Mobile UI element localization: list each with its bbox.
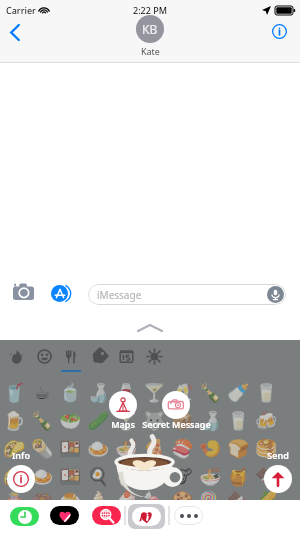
button[interactable]: 🍫 — [252, 462, 280, 490]
button[interactable]: More — [174, 506, 203, 525]
button[interactable]: 🍭 — [196, 490, 224, 504]
button[interactable]: 🍬 — [140, 490, 168, 504]
staticText: 🍛 — [87, 438, 110, 459]
button[interactable]: ☕ — [28, 378, 56, 406]
button[interactable]: App Store — [51, 285, 68, 302]
staticText: 🍻 — [255, 410, 278, 431]
button[interactable] — [7, 465, 35, 493]
staticText: 🍪 — [171, 490, 194, 504]
button[interactable]: 🍯 — [224, 462, 252, 490]
button[interactable]: 🌮 — [0, 462, 28, 490]
button[interactable]: Objects — [85, 340, 113, 374]
button[interactable]: 🍾 — [28, 406, 56, 434]
button[interactable]: 🍛 — [28, 462, 56, 490]
staticText: 🍱 — [59, 438, 82, 459]
button[interactable]: 🥤 — [0, 378, 28, 406]
staticText: Kate — [141, 45, 160, 57]
button[interactable]: 🍰 — [112, 490, 140, 504]
button[interactable]: 🍻 — [252, 406, 280, 434]
staticText: 🍭 — [199, 490, 222, 504]
staticText: 🍫 — [255, 466, 278, 487]
staticText: 🍯 — [227, 466, 250, 487]
staticText: 🍺 — [3, 410, 26, 431]
staticText: 🍶 — [87, 382, 110, 403]
button[interactable]: 🍼 — [224, 378, 252, 406]
button[interactable]: Recents — [10, 507, 39, 526]
button[interactable]: 🍷 — [112, 378, 140, 406]
staticText: 🌽 — [255, 490, 278, 504]
staticText: 🌮 — [3, 466, 26, 487]
button[interactable]: 🌯 — [28, 434, 56, 462]
button[interactable]: 🍣 — [168, 434, 196, 462]
staticText: 🍬 — [143, 490, 166, 504]
button[interactable]: 🥂 — [168, 378, 196, 406]
button[interactable]: 🧁 — [140, 462, 168, 490]
button[interactable]: 🍸 — [112, 406, 140, 434]
button[interactable]: 🍸 — [140, 378, 168, 406]
button[interactable]: 🍺 — [0, 406, 28, 434]
button[interactable]: 🍞 — [224, 434, 252, 462]
button[interactable] — [162, 391, 190, 419]
button[interactable]: 🍮 — [56, 490, 84, 504]
button[interactable]: Favorites — [50, 506, 79, 525]
button[interactable]: 🥞 — [252, 434, 280, 462]
button[interactable]: 🍶 — [84, 378, 112, 406]
button[interactable]: Smileys — [30, 340, 58, 374]
staticText: 🧁 — [143, 466, 166, 487]
staticText: Send — [267, 449, 289, 461]
button[interactable]: 🍤 — [196, 434, 224, 462]
button[interactable]: Details — [268, 20, 291, 43]
staticText: ☕ — [34, 382, 51, 403]
button[interactable]: 🍶 — [196, 406, 224, 434]
staticText: 🍷 — [115, 382, 138, 403]
button[interactable]: Back — [2, 20, 28, 46]
button[interactable]: 🥒 — [84, 406, 112, 434]
button[interactable]: 🍳 — [84, 462, 112, 490]
button[interactable]: 🍧 — [112, 462, 140, 490]
staticText: 🥒 — [87, 410, 110, 431]
staticText: 🥤 — [3, 382, 26, 403]
button[interactable]: KB — [136, 15, 164, 57]
staticText: 🌯 — [31, 438, 54, 459]
staticText: 🍾 — [199, 382, 222, 403]
button[interactable]: Dictate — [267, 286, 284, 303]
staticText: 🐺 — [143, 410, 166, 431]
staticText: 🥞 — [255, 438, 278, 459]
button[interactable]: 🌽 — [252, 490, 280, 504]
button[interactable]: iMessage — [88, 284, 286, 305]
button[interactable]: 🍵 — [56, 378, 84, 406]
button[interactable]: 🍜 — [196, 462, 224, 490]
staticText: 🍦 — [87, 490, 110, 504]
button[interactable]: 🥛 — [252, 378, 280, 406]
button[interactable]: Frequently used — [2, 340, 30, 374]
button[interactable]: 📦 — [168, 406, 196, 434]
button[interactable]: Weather — [140, 340, 168, 374]
button[interactable]: 🥛 — [224, 406, 252, 434]
button[interactable]: 🍩 — [28, 490, 56, 504]
button[interactable]: 🍜 — [112, 434, 140, 462]
button[interactable]: 🥗 — [56, 406, 84, 434]
button[interactable]: 🍕 — [140, 434, 168, 462]
staticText: 🍸 — [115, 410, 138, 431]
button[interactable]: 🍱 — [56, 434, 84, 462]
button[interactable]: Search — [92, 506, 121, 525]
button[interactable]: 🎂 — [0, 490, 28, 504]
button[interactable] — [264, 465, 292, 493]
staticText: 🍾 — [31, 410, 54, 431]
button[interactable]: 🍛 — [84, 434, 112, 462]
button[interactable]: 🍦 — [84, 490, 112, 504]
button[interactable]: 🍾 — [196, 378, 224, 406]
button[interactable]: Selected app — [128, 504, 165, 529]
button[interactable]: 🐺 — [140, 406, 168, 434]
button[interactable]: 🍫 — [224, 490, 252, 504]
staticText: 🍫 — [227, 490, 250, 504]
button[interactable]: Calendar — [112, 340, 140, 374]
staticText: 🥛 — [227, 410, 250, 431]
button[interactable]: Food — [57, 340, 85, 374]
button[interactable]: 🍱 — [56, 462, 84, 490]
button[interactable] — [109, 391, 137, 419]
button[interactable]: Camera — [10, 281, 36, 302]
button[interactable]: 🍪 — [168, 490, 196, 504]
button[interactable]: 🌮 — [0, 434, 28, 462]
button[interactable]: 🐮 — [168, 462, 196, 490]
